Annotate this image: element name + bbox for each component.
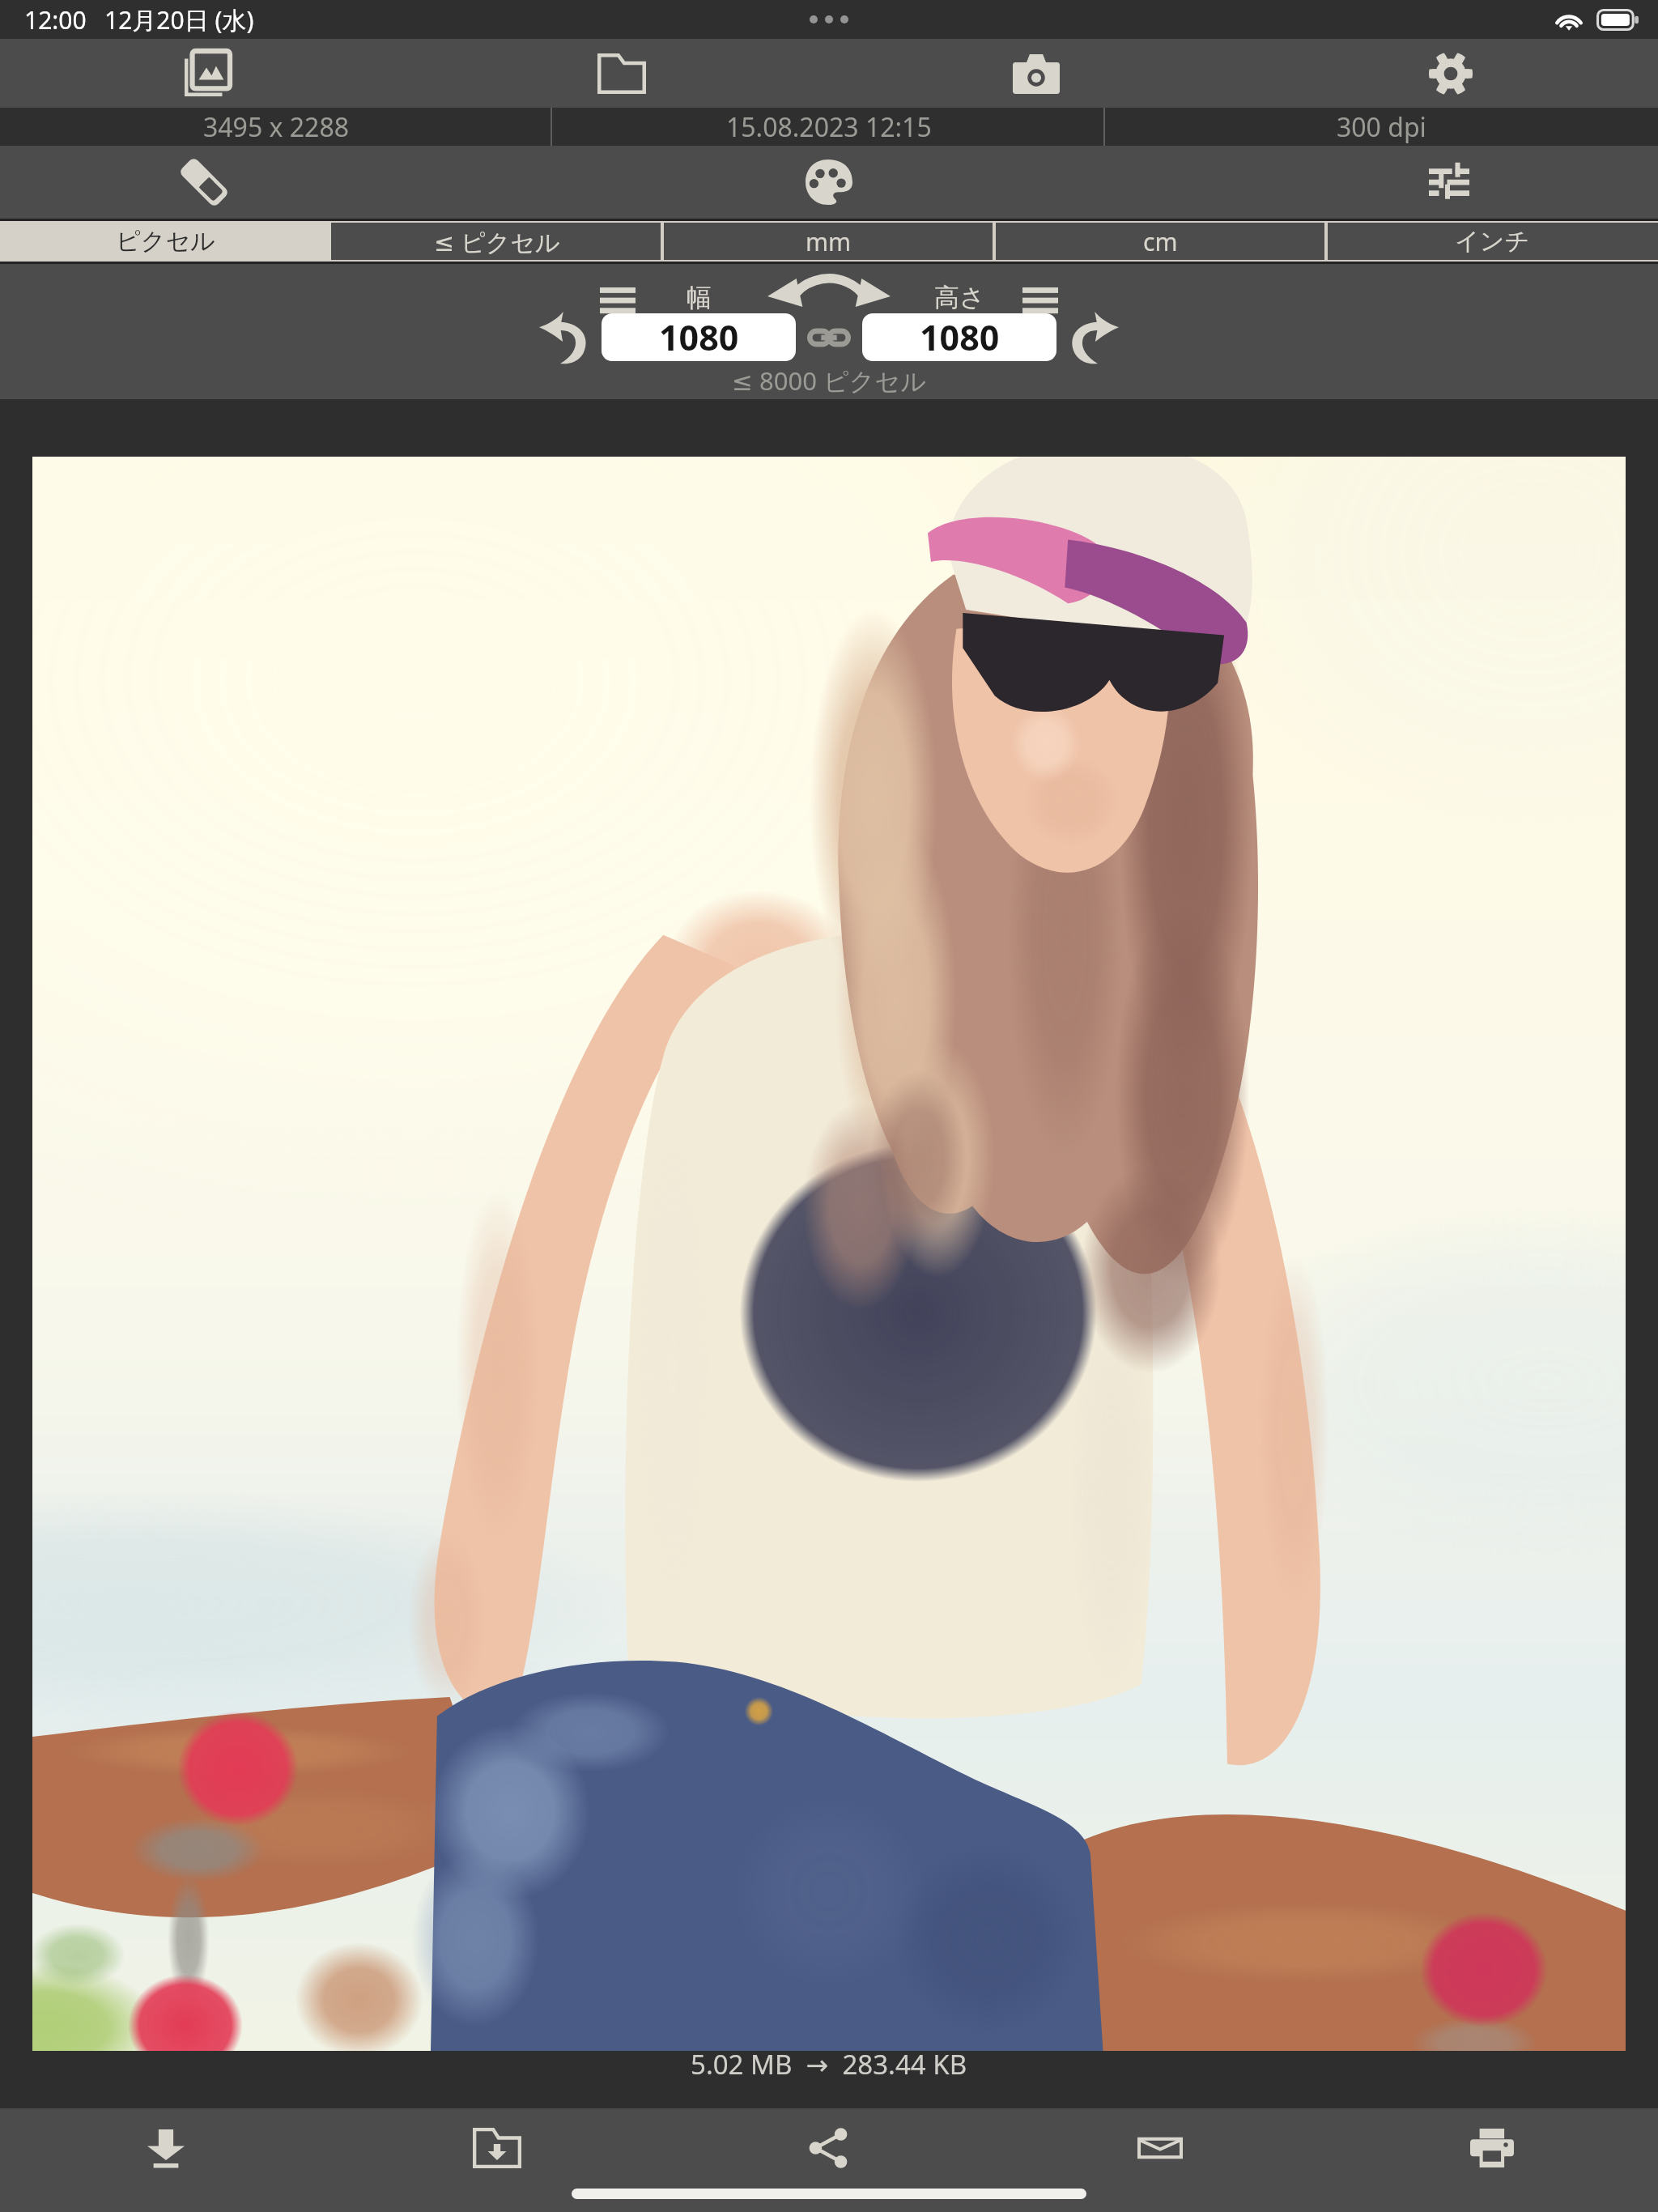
button[interactable]: Photo library bbox=[0, 39, 414, 108]
button[interactable]: Width presets bbox=[595, 278, 640, 323]
staticText: 3495 x 2288 bbox=[203, 109, 350, 145]
button[interactable]: 1080 bbox=[602, 313, 796, 361]
button[interactable]: Palette bbox=[793, 147, 865, 218]
staticText: 300 dpi bbox=[1337, 109, 1426, 145]
button[interactable]: ≤ ピクセル bbox=[331, 221, 662, 262]
button[interactable]: Swap width and height bbox=[760, 270, 898, 322]
staticText: 高さ bbox=[934, 282, 985, 313]
button[interactable]: Settings bbox=[1243, 39, 1658, 108]
button[interactable]: Link aspect ratio bbox=[800, 308, 858, 367]
button[interactable]: Eraser bbox=[168, 147, 240, 218]
button[interactable]: Share bbox=[662, 2108, 994, 2188]
staticText: 1080 bbox=[920, 313, 1000, 361]
button[interactable]: Undo bbox=[532, 305, 597, 370]
button[interactable]: インチ bbox=[1326, 221, 1658, 262]
staticText: ≤ ピクセル bbox=[434, 225, 560, 258]
button[interactable]: Adjust bbox=[1414, 147, 1485, 218]
button[interactable]: mm bbox=[662, 221, 994, 262]
button[interactable]: Email bbox=[994, 2108, 1326, 2188]
button[interactable]: 15.08.2023 12:15 bbox=[552, 108, 1105, 146]
staticText: 12:00 bbox=[24, 3, 87, 36]
button[interactable]: 1080 bbox=[862, 313, 1056, 361]
staticText: 幅 bbox=[687, 282, 712, 313]
staticText: 15.08.2023 12:15 bbox=[726, 109, 932, 145]
staticText: 5.02 MB → 283.44 KB bbox=[691, 2046, 967, 2082]
button[interactable]: ピクセル bbox=[0, 221, 331, 262]
button[interactable]: Height presets bbox=[1018, 278, 1063, 323]
button[interactable]: Folder bbox=[414, 39, 829, 108]
staticText: インチ bbox=[1455, 226, 1530, 257]
button[interactable]: cm bbox=[994, 221, 1326, 262]
button[interactable]: Save to folder bbox=[331, 2108, 662, 2188]
staticText: 12月20日 (水) bbox=[104, 3, 254, 36]
staticText: 1080 bbox=[659, 313, 739, 361]
button[interactable]: 3495 x 2288 bbox=[0, 108, 552, 146]
button[interactable]: Redo bbox=[1061, 305, 1126, 370]
button[interactable]: Download bbox=[0, 2108, 331, 2188]
button[interactable]: 300 dpi bbox=[1105, 108, 1658, 146]
button[interactable]: Print bbox=[1326, 2108, 1658, 2188]
staticText: ピクセル bbox=[116, 226, 215, 257]
staticText: cm bbox=[1143, 225, 1178, 258]
staticText: mm bbox=[806, 225, 852, 258]
staticText: ≤ 8000 ピクセル bbox=[732, 364, 926, 398]
button[interactable]: Camera bbox=[829, 39, 1243, 108]
